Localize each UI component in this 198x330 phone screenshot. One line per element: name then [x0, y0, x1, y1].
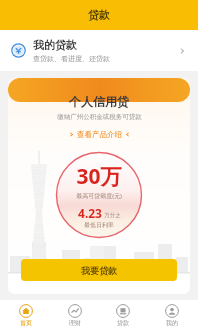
staticText: 理财 [69, 319, 81, 327]
button[interactable]: 我的 [150, 302, 194, 329]
staticText: 最低日利率 [84, 221, 114, 229]
staticText: 30万 [76, 162, 122, 191]
staticText: 首页 [20, 319, 32, 327]
staticText: 最高可贷额度(元) [76, 192, 122, 200]
other: 理财 [68, 304, 82, 318]
staticText: 我的 [166, 319, 178, 327]
button[interactable]: 查看产品介绍 [63, 128, 136, 141]
staticText: 查贷款、看进度、还贷款 [33, 54, 110, 63]
staticText: 个人信用贷 [69, 94, 129, 109]
staticText: 我要贷款 [81, 265, 117, 276]
staticText: 4.23 [78, 205, 102, 221]
other: 我的 [165, 304, 179, 318]
staticText: 我的贷款 [33, 38, 77, 52]
button[interactable]: 理财 [53, 302, 97, 329]
button[interactable]: 我要贷款 [21, 259, 177, 281]
button[interactable]: 首页 [4, 302, 48, 329]
other: 首页 [19, 304, 33, 318]
staticText: 贷款 [117, 319, 129, 327]
staticText: 贷款 [88, 8, 110, 22]
button[interactable]: 我的贷款 [0, 30, 198, 71]
staticText: 缴纳广州公积金或税务可贷款 [57, 113, 142, 121]
other: 贷款 [116, 304, 130, 318]
staticText: 万分之 [104, 212, 121, 219]
staticText: 查看产品介绍 [77, 130, 122, 139]
button[interactable]: 贷款 [101, 302, 145, 329]
